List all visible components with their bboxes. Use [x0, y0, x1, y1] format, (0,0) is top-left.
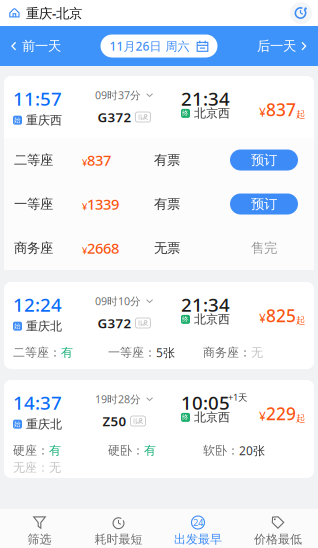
staticText: 21:34: [181, 86, 230, 111]
staticText: 预订: [251, 196, 277, 212]
staticText: ¥: [82, 244, 87, 257]
staticText: 1339: [87, 194, 119, 214]
staticText: 重庆西: [26, 113, 62, 127]
staticText: 重庆北: [26, 417, 62, 431]
staticText: 商务座：: [203, 345, 251, 360]
staticText: 有票: [154, 196, 180, 212]
button[interactable]: 刷新: [284, 0, 318, 26]
staticText: 售完: [251, 240, 277, 256]
staticText: 11月26日 周六: [109, 38, 189, 54]
staticText: ¥: [82, 156, 87, 169]
button[interactable]: 预订: [230, 193, 298, 214]
staticText: 一等座：: [108, 345, 156, 360]
staticText: 始: [14, 322, 21, 330]
staticText: 有: [49, 443, 61, 458]
staticText: 14:37: [13, 390, 62, 415]
staticText: 价格最低: [254, 532, 302, 547]
staticText: ¥: [259, 310, 266, 326]
staticText: 11:57: [13, 86, 62, 111]
staticText: +1天: [228, 391, 247, 403]
staticText: 前一天: [22, 38, 61, 54]
staticText: Z50: [102, 412, 126, 430]
staticText: 10:05: [181, 390, 230, 415]
staticText: 20张: [239, 442, 265, 458]
staticText: 5张: [156, 344, 175, 360]
staticText: 2668: [87, 238, 119, 258]
button[interactable]: 24: [158, 509, 238, 548]
staticText: G372: [97, 108, 131, 126]
staticText: 始: [14, 116, 21, 124]
staticText: 终: [182, 315, 189, 323]
staticText: 229: [266, 402, 296, 425]
button[interactable]: 后一天: [245, 26, 318, 66]
staticText: 耗时最短: [94, 532, 142, 547]
button[interactable]: 预订: [230, 149, 298, 170]
staticText: 北京西: [194, 410, 230, 425]
staticText: 重庆北: [26, 319, 62, 333]
staticText: 起: [296, 109, 305, 120]
staticText: 二等座: [14, 152, 53, 168]
staticText: 12:24: [13, 292, 62, 317]
button[interactable]: 11月26日 周六: [100, 34, 217, 57]
staticText: 有: [144, 443, 156, 458]
button[interactable]: 筛选: [0, 509, 79, 548]
staticText: 825: [266, 304, 296, 327]
staticText: 重庆-北京: [26, 4, 82, 22]
staticText: 有: [61, 345, 73, 360]
staticText: 无座：: [13, 460, 49, 475]
staticText: 始: [14, 420, 21, 428]
staticText: 837: [266, 98, 296, 121]
staticText: 二等座：: [13, 345, 61, 360]
button[interactable]: 价格最低: [238, 509, 318, 548]
button[interactable]: 耗时最短: [79, 509, 158, 548]
staticText: 09时10分: [95, 294, 141, 308]
staticText: 一等座: [14, 196, 53, 212]
staticText: 终: [182, 413, 189, 421]
staticText: 软卧：: [203, 443, 239, 458]
staticText: 硬卧：: [108, 443, 144, 458]
staticText: 有票: [154, 152, 180, 168]
staticText: 21:34: [181, 292, 230, 317]
staticText: 预订: [251, 152, 277, 168]
staticText: 无: [251, 345, 263, 360]
staticText: 硬座：: [13, 443, 49, 458]
staticText: 后一天: [257, 38, 296, 54]
staticText: ¥: [259, 104, 266, 120]
staticText: 09时37分: [95, 88, 141, 102]
staticText: 24: [193, 516, 203, 529]
staticText: ¥: [82, 200, 87, 213]
staticText: 出发最早: [174, 532, 222, 547]
staticText: 北京西: [194, 312, 230, 327]
staticText: 终: [182, 109, 189, 117]
staticText: 北京西: [194, 106, 230, 121]
staticText: 19时28分: [95, 392, 141, 406]
staticText: 837: [87, 150, 111, 170]
staticText: 无: [49, 460, 61, 475]
staticText: 筛选: [27, 532, 51, 547]
staticText: 起: [296, 315, 305, 326]
staticText: 无票: [154, 240, 180, 256]
button[interactable]: 前一天: [0, 26, 73, 66]
staticText: G372: [97, 314, 131, 332]
staticText: 起: [296, 413, 305, 424]
staticText: 商务座: [14, 240, 53, 256]
staticText: ¥: [259, 408, 266, 424]
button[interactable]: 重庆-北京: [0, 0, 90, 26]
